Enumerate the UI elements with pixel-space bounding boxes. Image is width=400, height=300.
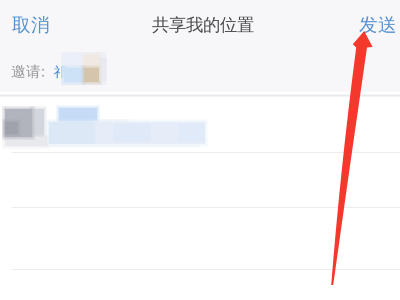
staticText: 邀请: xyxy=(11,61,45,81)
staticText: 祁 xyxy=(53,64,66,80)
button[interactable] xyxy=(0,95,400,152)
staticText: 发送 xyxy=(359,13,397,36)
button[interactable]: 取消 xyxy=(0,2,64,48)
button[interactable]: 发送 xyxy=(345,2,400,48)
staticText: 共享我的位置 xyxy=(152,14,254,36)
staticText: 取消 xyxy=(12,13,50,36)
